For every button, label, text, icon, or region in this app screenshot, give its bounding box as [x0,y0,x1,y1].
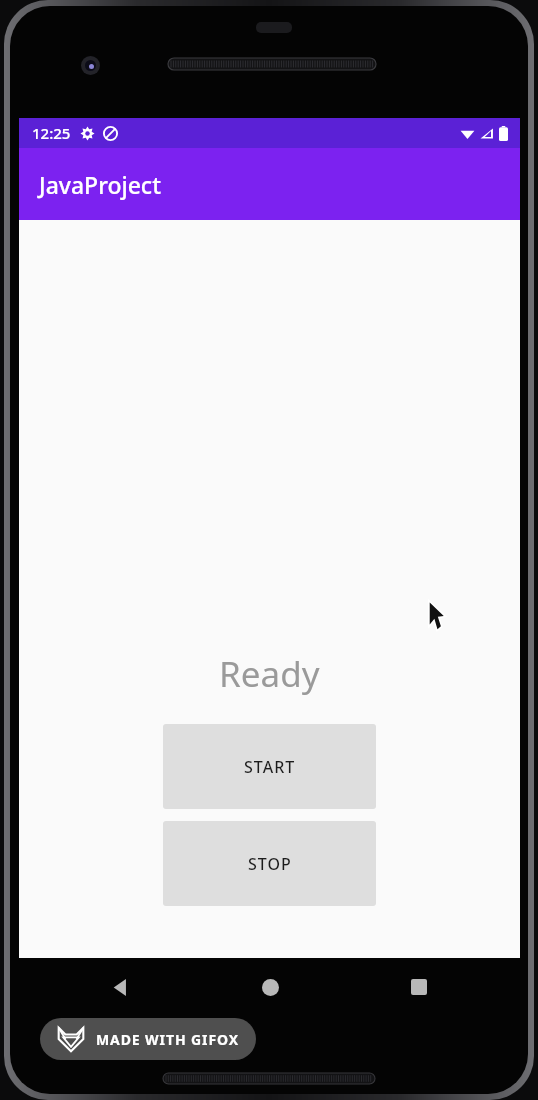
staticText: Ready [219,650,320,698]
button[interactable]: Home [247,964,293,1010]
staticText: JavaProject [39,169,161,200]
staticText: STOP [248,853,292,875]
staticText: 12:25 [32,123,71,143]
button[interactable]: START [163,724,376,809]
button[interactable]: STOP [163,821,376,906]
staticText: START [244,756,296,778]
button[interactable]: Back [97,964,143,1010]
staticText: MADE WITH GIFOX [96,1030,239,1049]
button[interactable]: Recent apps [396,964,442,1010]
